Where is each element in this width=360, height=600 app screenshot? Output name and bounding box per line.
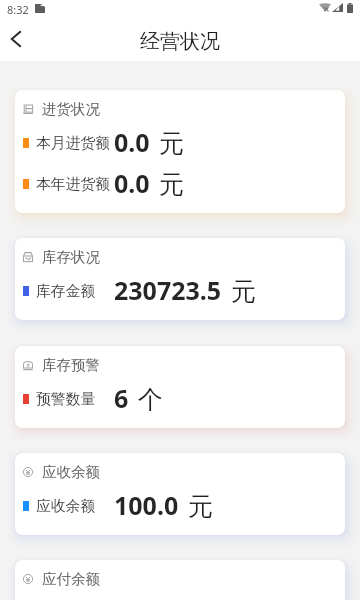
staticText: 库存金额	[36, 282, 96, 301]
staticText: 元	[188, 491, 213, 521]
button[interactable]: 库存状况	[15, 238, 345, 320]
staticText: 应收余额	[36, 497, 96, 516]
staticText: 元	[231, 276, 256, 306]
staticText: 230723.5	[114, 273, 222, 303]
staticText: 应收余额	[42, 463, 100, 481]
staticText: 元	[159, 128, 184, 158]
staticText: 进货状况	[42, 100, 100, 118]
staticText: 0.0	[114, 125, 150, 155]
staticText: 8:32	[7, 2, 29, 17]
button[interactable]: 返回	[0, 22, 34, 61]
staticText: 本月进货额	[36, 134, 110, 153]
staticText: 经营状况	[140, 29, 220, 54]
staticText: 预警数量	[36, 390, 96, 409]
button[interactable]: 库存预警	[15, 346, 345, 428]
staticText: 个	[138, 384, 163, 414]
staticText: 本年进货额	[36, 175, 110, 194]
staticText: 100.0	[114, 488, 179, 518]
button[interactable]: 应收余额	[15, 453, 345, 535]
staticText: 元	[159, 169, 184, 199]
staticText: 应付余额	[42, 570, 100, 588]
staticText: 库存状况	[42, 248, 100, 266]
staticText: 0.0	[114, 166, 150, 196]
button[interactable]: 应付余额	[15, 560, 345, 600]
staticText: 库存预警	[42, 356, 100, 374]
button[interactable]: 进货状况	[15, 90, 345, 213]
staticText: 6	[114, 381, 129, 411]
